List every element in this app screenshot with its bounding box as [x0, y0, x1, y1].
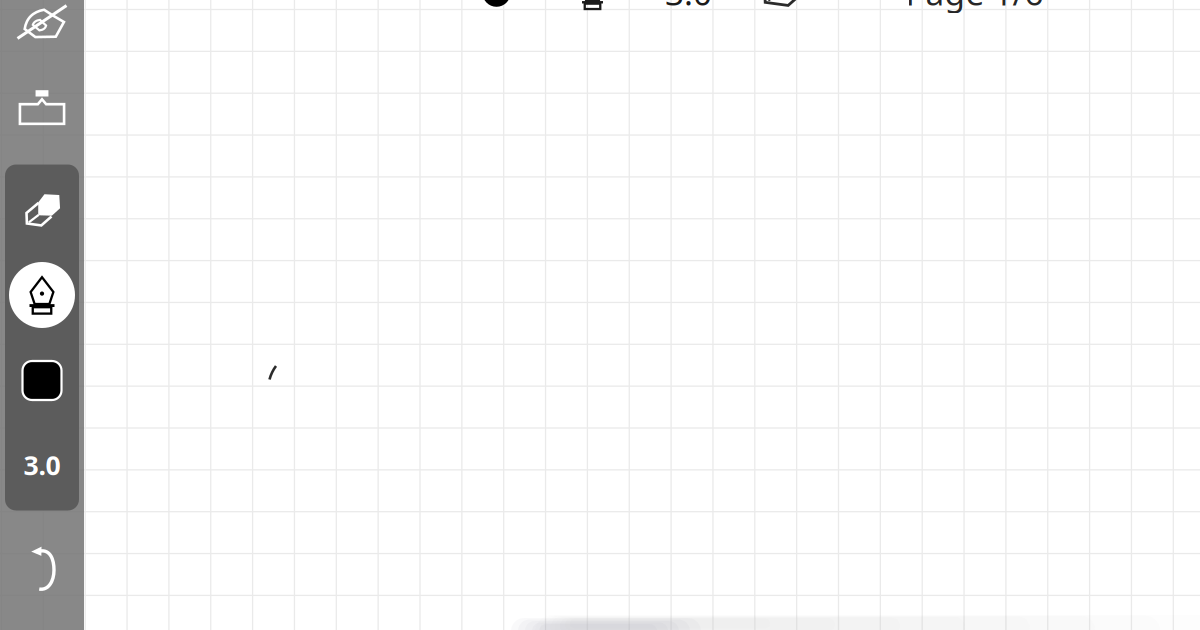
button[interactable]: Stroke width	[0, 0, 1200, 630]
button[interactable]: Colour black	[0, 0, 84, 630]
button[interactable]: Show toolbar	[0, 0, 84, 630]
button[interactable]: Pen	[0, 0, 84, 630]
button[interactable]: Palm rejection	[0, 0, 84, 630]
button[interactable]: Eraser tool	[0, 0, 1200, 630]
button[interactable]: Eraser	[0, 0, 84, 630]
staticText: Page 1/6	[905, 0, 1043, 15]
button[interactable]: Page 1 of 6	[0, 0, 1200, 630]
button[interactable]: Colour	[0, 0, 1200, 630]
button[interactable]: Stroke width 3.0	[0, 0, 84, 630]
button[interactable]: Undo	[0, 0, 84, 630]
staticText: 3.0	[665, 0, 712, 15]
button[interactable]: Pen tool	[0, 0, 1200, 630]
staticText: 3.0	[23, 447, 60, 483]
